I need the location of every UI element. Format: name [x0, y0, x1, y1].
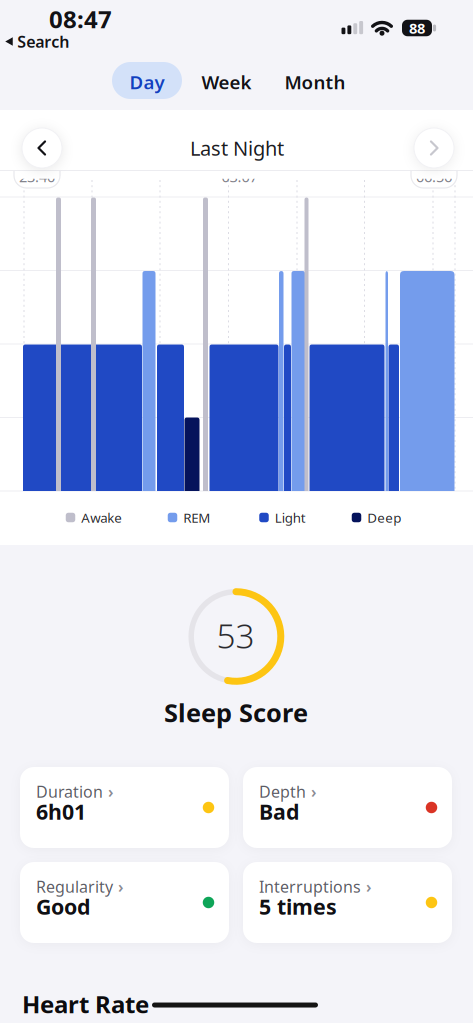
staticText: Last Night	[190, 135, 284, 161]
staticText: ›	[366, 876, 372, 897]
staticText: REM	[183, 509, 210, 526]
button[interactable]: Duration	[20, 767, 229, 848]
staticText: Duration	[36, 781, 103, 802]
staticText: ›	[118, 876, 124, 897]
button[interactable]: Depth	[243, 767, 452, 848]
button[interactable]: Month	[284, 70, 345, 94]
staticText: 53	[216, 613, 254, 658]
button[interactable]: Interruptions	[243, 862, 452, 943]
staticText: 03:07	[221, 167, 257, 186]
staticText: ›	[311, 781, 317, 802]
button[interactable]: Regularity	[20, 862, 229, 943]
button[interactable]	[414, 128, 454, 168]
staticText: Bad	[259, 797, 299, 825]
button[interactable]: Week	[201, 70, 251, 94]
staticText: 6h01	[36, 797, 86, 825]
staticText: Search	[17, 31, 69, 52]
staticText: Interruptions	[259, 876, 361, 897]
staticText: Depth	[259, 781, 306, 802]
staticText: Regularity	[36, 876, 113, 897]
staticText: 5 times	[259, 892, 337, 920]
staticText: Heart Rate	[22, 988, 149, 1020]
staticText: Month	[284, 70, 345, 94]
staticText: 88	[409, 18, 425, 38]
staticText: 08:47	[49, 3, 112, 35]
button[interactable]: Day	[112, 62, 182, 99]
staticText: ›	[108, 781, 114, 802]
staticText: Day	[129, 70, 164, 94]
staticText: Week	[201, 70, 251, 94]
staticText: Deep	[367, 509, 401, 526]
staticText: 06:56	[416, 167, 452, 186]
staticText: Sleep Score	[164, 696, 308, 729]
staticText: Good	[36, 892, 90, 920]
staticText: Light	[275, 509, 306, 526]
staticText: 23:40	[19, 167, 55, 186]
staticText: Awake	[81, 509, 122, 526]
button[interactable]: Search	[5, 31, 69, 52]
button[interactable]	[22, 128, 62, 168]
